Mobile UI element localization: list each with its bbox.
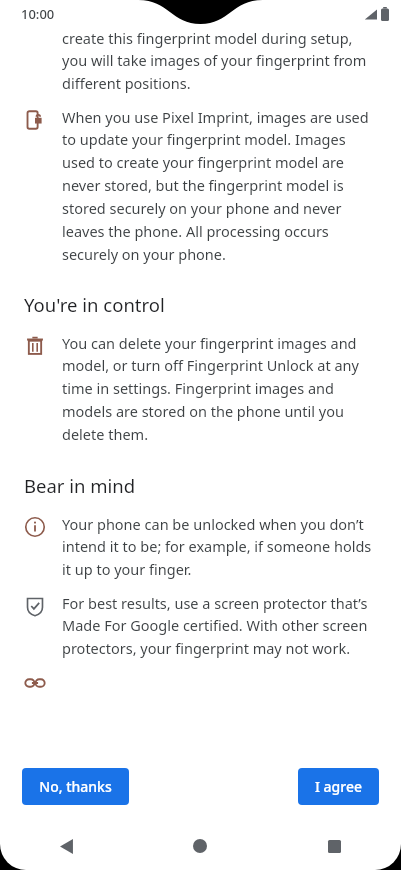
staticText: For best results, use a screen protector…	[62, 593, 377, 658]
button[interactable]: Home	[133, 822, 267, 870]
staticText: I agree	[315, 777, 362, 796]
button[interactable]: No, thanks	[22, 768, 129, 805]
other: Verified	[24, 595, 46, 617]
staticText: No, thanks	[39, 777, 112, 796]
button[interactable]: Link	[24, 672, 46, 694]
staticText: 10:00	[21, 5, 55, 23]
staticText: Bear in mind	[24, 473, 136, 498]
button[interactable]: Back	[0, 822, 133, 870]
other: Phone lock	[24, 109, 46, 131]
button[interactable]: I agree	[298, 768, 379, 805]
staticText: Your phone can be unlocked when you don’…	[62, 514, 377, 579]
staticText: You're in control	[24, 292, 165, 317]
staticText: When you use Pixel Imprint, images are u…	[62, 107, 377, 264]
staticText: You can delete your fingerprint images a…	[62, 333, 377, 444]
button[interactable]: Recent apps	[267, 822, 401, 870]
other: Delete	[24, 335, 46, 357]
staticText: create this fingerprint model during set…	[62, 28, 377, 93]
other: Information	[24, 516, 46, 538]
